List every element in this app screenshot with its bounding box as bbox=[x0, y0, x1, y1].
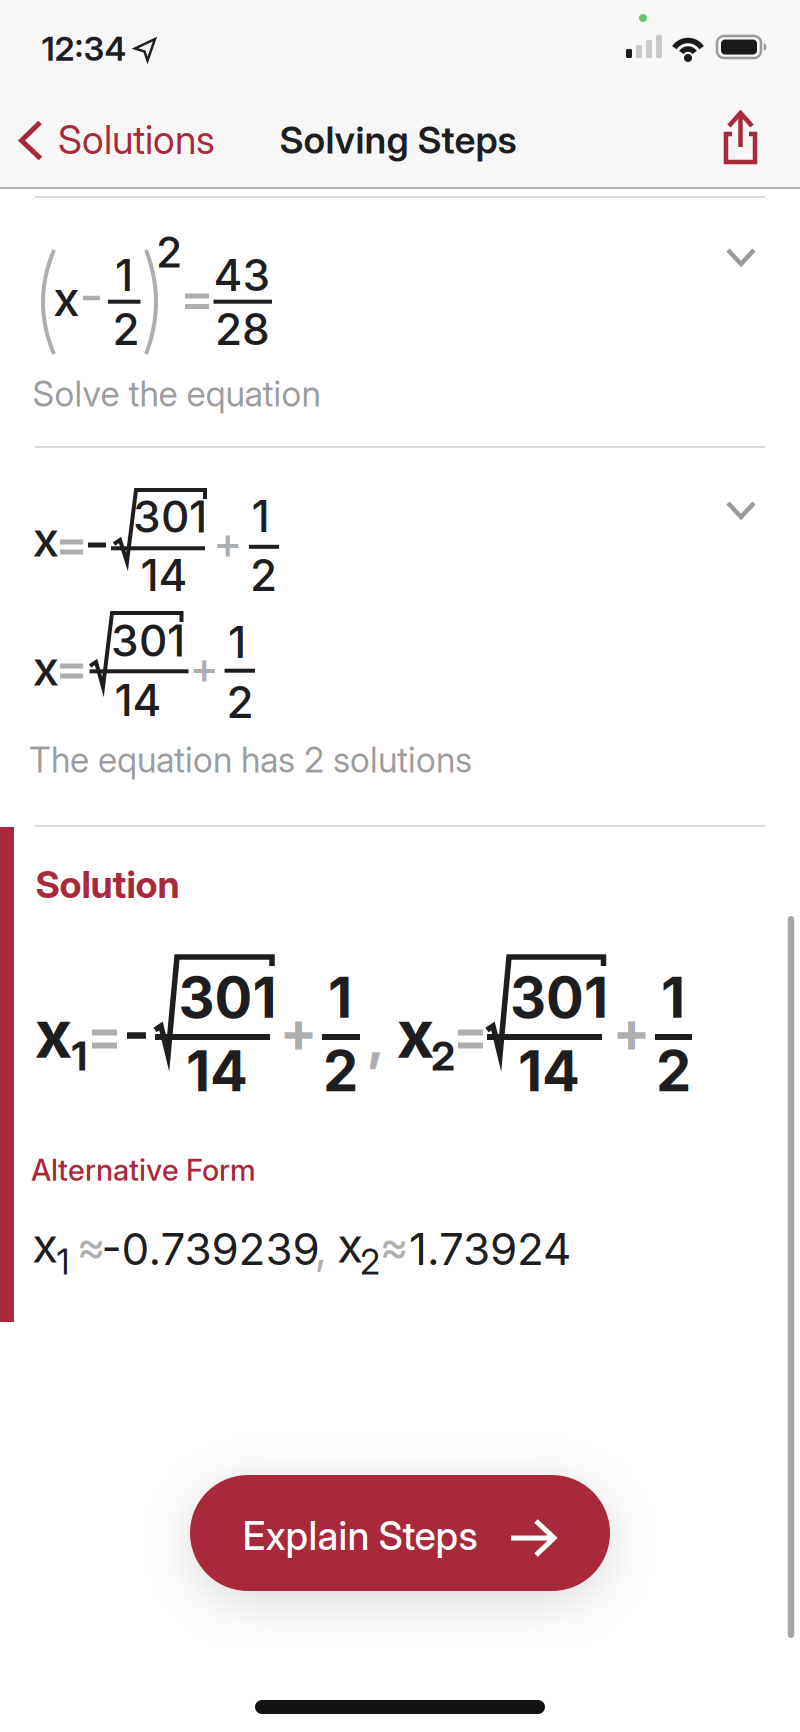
staticText: 2 bbox=[112, 302, 139, 356]
staticText: x bbox=[396, 994, 434, 1073]
staticText: 2 bbox=[323, 1037, 358, 1105]
staticText: , bbox=[366, 1004, 385, 1072]
staticText: 1 bbox=[328, 964, 352, 1031]
button[interactable]: Share bbox=[714, 103, 768, 175]
staticText: + bbox=[213, 516, 242, 570]
button[interactable]: Step: the equation has 2 solutions bbox=[0, 446, 800, 825]
staticText: 12:34 bbox=[41, 28, 126, 69]
button[interactable]: Back bbox=[10, 110, 240, 170]
staticText: 14 bbox=[186, 1037, 248, 1105]
staticText: Solve the equation bbox=[32, 373, 320, 415]
staticText: Explain Steps bbox=[242, 1513, 477, 1559]
staticText: 301 bbox=[178, 964, 276, 1031]
staticText: Solution bbox=[35, 862, 179, 907]
staticText: , bbox=[314, 1221, 327, 1275]
staticText: 301 bbox=[133, 490, 207, 543]
staticText: Solving Steps bbox=[279, 117, 516, 163]
staticText: x bbox=[32, 510, 59, 568]
staticText: 1 bbox=[71, 1032, 87, 1080]
staticText: 2 bbox=[156, 226, 182, 278]
staticText: 1 bbox=[661, 964, 685, 1031]
staticText: The equation has 2 solutions bbox=[29, 739, 472, 781]
staticText: ≈ bbox=[76, 1219, 105, 1273]
staticText: 14 bbox=[114, 673, 161, 727]
staticText: x bbox=[32, 1216, 58, 1274]
staticText: 2 bbox=[250, 548, 277, 602]
staticText: 1.73924 bbox=[409, 1222, 571, 1276]
staticText: x bbox=[337, 1216, 363, 1274]
staticText: x bbox=[53, 269, 80, 328]
staticText: x bbox=[32, 639, 59, 697]
staticText: 28 bbox=[215, 302, 270, 356]
staticText: 301 bbox=[111, 614, 185, 667]
button[interactable]: Explain Steps bbox=[190, 1475, 610, 1591]
staticText: 14 bbox=[518, 1037, 580, 1105]
staticText: 301 bbox=[510, 964, 608, 1031]
staticText: ≈ bbox=[379, 1219, 408, 1273]
staticText: 2 bbox=[360, 1241, 380, 1283]
staticText: 1 bbox=[115, 248, 133, 302]
staticText: + bbox=[279, 998, 317, 1065]
staticText: Solutions bbox=[58, 117, 215, 163]
staticText: + bbox=[612, 998, 650, 1065]
staticText: Alternative Form bbox=[31, 1152, 256, 1188]
staticText: 1 bbox=[228, 615, 246, 669]
button[interactable]: Step: solve the equation bbox=[0, 196, 800, 446]
staticText: -0.739239 bbox=[101, 1222, 319, 1276]
staticText: 43 bbox=[213, 248, 270, 302]
staticText: 14 bbox=[140, 548, 187, 602]
staticText: 2 bbox=[431, 1032, 455, 1080]
staticText: x bbox=[34, 994, 72, 1073]
staticText: 2 bbox=[656, 1037, 691, 1105]
staticText: 1 bbox=[56, 1241, 69, 1283]
staticText: 1 bbox=[251, 489, 269, 543]
staticText: 2 bbox=[226, 675, 253, 729]
staticText: + bbox=[189, 641, 218, 695]
